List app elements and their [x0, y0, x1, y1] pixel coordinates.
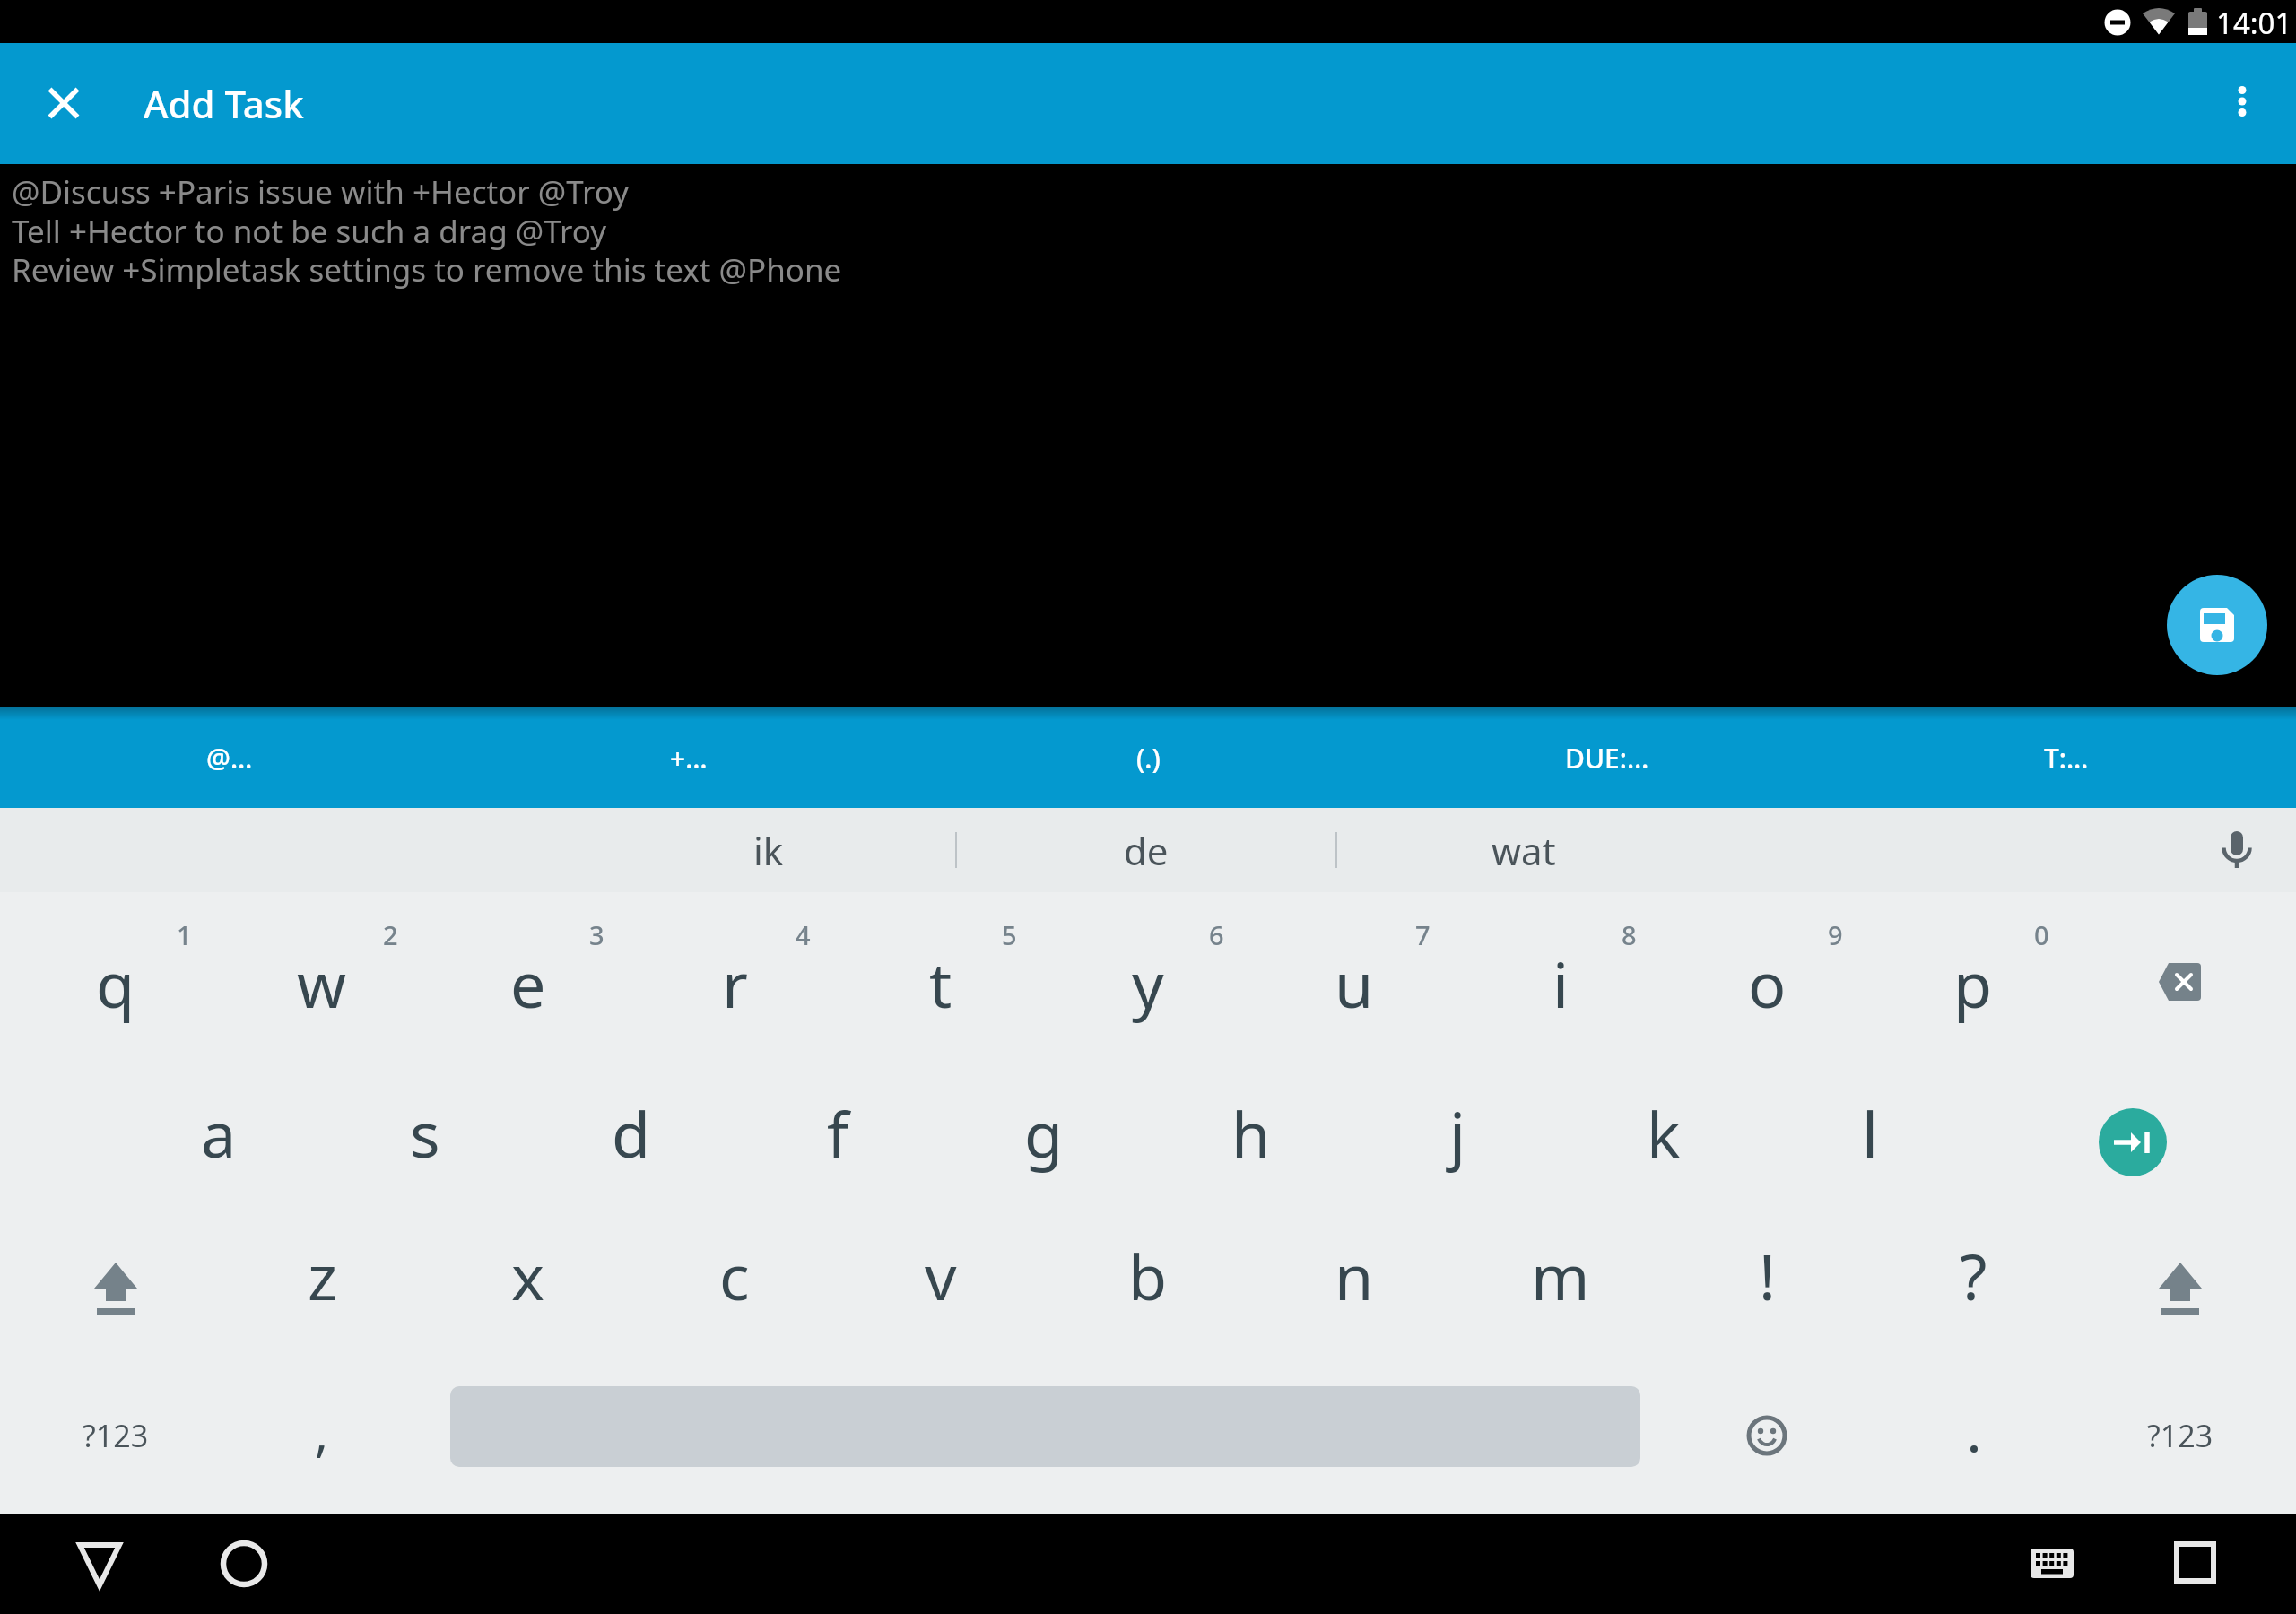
button[interactable]: DUE:…	[1378, 707, 1837, 808]
staticText: l	[1862, 1090, 1879, 1176]
button[interactable]: !	[1664, 1198, 1870, 1353]
button[interactable]: k	[1561, 1055, 1767, 1210]
button[interactable]	[450, 1386, 1640, 1467]
button[interactable]	[2168, 1536, 2222, 1590]
staticText: ,	[315, 1398, 329, 1466]
button[interactable]: x	[425, 1198, 631, 1353]
staticText: (.)	[1136, 740, 1161, 777]
staticText: j	[1449, 1090, 1466, 1176]
button[interactable]: d	[528, 1055, 735, 1210]
staticText: b	[1128, 1233, 1168, 1318]
button[interactable]: p	[1870, 906, 2076, 1061]
button[interactable]: m	[1457, 1198, 1664, 1353]
staticText: g	[1024, 1090, 1064, 1176]
staticText: ik	[753, 825, 784, 876]
button[interactable]: g	[941, 1055, 1147, 1210]
button[interactable]	[2077, 906, 2283, 1061]
staticText: s	[410, 1090, 440, 1176]
staticText: f	[827, 1090, 849, 1176]
button[interactable]: i	[1457, 906, 1664, 1061]
button[interactable]: c	[631, 1198, 838, 1353]
staticText: ?	[1960, 1233, 1987, 1318]
button[interactable]: T:…	[1837, 707, 2296, 808]
staticText: wat	[1492, 825, 1556, 876]
button[interactable]: ,	[219, 1354, 425, 1509]
staticText: ?123	[2147, 1415, 2213, 1456]
staticText: @Discuss +Paris issue with +Hector @Troy…	[12, 170, 842, 291]
button[interactable]: j	[1354, 1055, 1561, 1210]
button[interactable]	[2167, 575, 2267, 675]
button[interactable]: e	[425, 906, 631, 1061]
button[interactable]	[2215, 76, 2269, 130]
staticText: Add Task	[143, 78, 304, 129]
button[interactable]: r	[631, 906, 838, 1061]
button[interactable]: l	[1767, 1055, 1973, 1210]
button[interactable]: t	[838, 906, 1044, 1061]
button[interactable]	[73, 1536, 126, 1590]
button[interactable]	[36, 75, 91, 131]
button[interactable]	[2025, 1536, 2079, 1590]
staticText: p	[1953, 941, 1993, 1026]
button[interactable]: f	[735, 1055, 941, 1210]
staticText: o	[1748, 941, 1787, 1026]
staticText: m	[1531, 1233, 1590, 1318]
button[interactable]: q	[13, 906, 219, 1061]
staticText: 2	[383, 917, 398, 952]
staticText: 6	[1209, 917, 1224, 952]
button[interactable]	[13, 1208, 219, 1363]
button[interactable]: +…	[459, 707, 918, 808]
staticText: v	[925, 1233, 957, 1318]
button[interactable]: ?123	[2077, 1358, 2283, 1513]
staticText: n	[1335, 1233, 1374, 1318]
button[interactable]: (.)	[918, 707, 1378, 808]
staticText: 1	[177, 917, 192, 952]
button[interactable]: b	[1045, 1198, 1251, 1353]
staticText: 5	[1002, 917, 1017, 952]
staticText: x	[511, 1233, 545, 1318]
staticText: z	[308, 1233, 337, 1318]
staticText: T:…	[2044, 740, 2089, 777]
button[interactable]: wat	[1336, 808, 1711, 892]
staticText: 4	[796, 917, 811, 952]
button[interactable]: y	[1045, 906, 1251, 1061]
button[interactable]: ?	[1870, 1198, 2076, 1353]
staticText: w	[297, 941, 347, 1026]
staticText: 14:01	[2216, 3, 2292, 43]
staticText: i	[1552, 941, 1570, 1026]
staticText: u	[1335, 941, 1374, 1026]
button[interactable]	[1664, 1358, 1870, 1513]
button[interactable]: @…	[0, 707, 459, 808]
button[interactable]: ik	[581, 808, 956, 892]
staticText: a	[201, 1090, 237, 1176]
staticText: r	[722, 941, 748, 1026]
staticText: k	[1647, 1090, 1681, 1176]
staticText: q	[96, 941, 135, 1026]
button[interactable]	[2077, 1208, 2283, 1363]
staticText: c	[719, 1233, 750, 1318]
button[interactable]	[217, 1537, 271, 1591]
staticText: y	[1132, 941, 1164, 1026]
button[interactable]	[2030, 1064, 2236, 1219]
staticText: e	[510, 941, 546, 1026]
staticText: 7	[1415, 917, 1431, 952]
staticText: @…	[206, 740, 253, 777]
staticText: 9	[1828, 917, 1843, 952]
button[interactable]: z	[219, 1198, 425, 1353]
button[interactable]: o	[1664, 906, 1870, 1061]
button[interactable]: w	[219, 906, 425, 1061]
button[interactable]: u	[1251, 906, 1457, 1061]
staticText: 0	[2034, 917, 2049, 952]
button[interactable]: h	[1148, 1055, 1354, 1210]
button[interactable]: a	[116, 1055, 322, 1210]
button[interactable]: de	[956, 808, 1336, 892]
staticText: +…	[670, 740, 708, 777]
button[interactable]: s	[322, 1055, 528, 1210]
button[interactable]: v	[838, 1198, 1044, 1353]
staticText: t	[929, 941, 952, 1026]
staticText: 8	[1622, 917, 1637, 952]
staticText: 3	[589, 917, 604, 952]
button[interactable]: ?123	[13, 1358, 219, 1513]
button[interactable]: n	[1251, 1198, 1457, 1353]
staticText: !	[1759, 1233, 1776, 1318]
button[interactable]	[1870, 1358, 2076, 1513]
